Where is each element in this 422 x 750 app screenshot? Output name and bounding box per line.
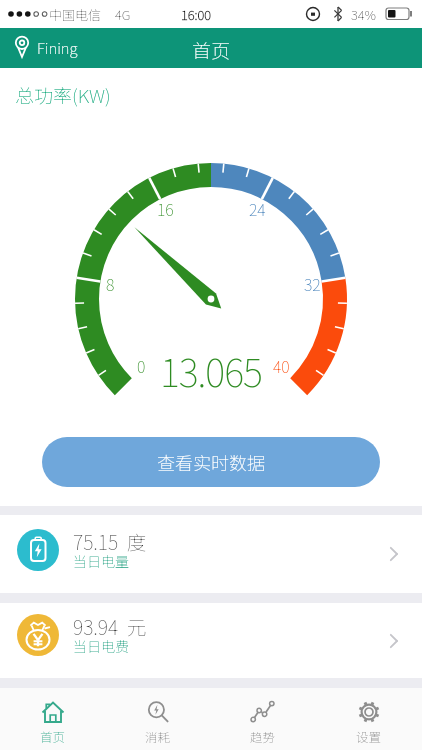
staticText: Fining — [37, 37, 78, 59]
staticText: 24 — [249, 197, 266, 220]
staticText: 查看实时数据 — [157, 449, 265, 475]
staticText: 75.15 度 — [73, 527, 147, 555]
button[interactable]: 93.94 元 — [0, 603, 422, 678]
staticText: 首页 — [40, 727, 66, 745]
staticText: 总功率(KW) — [15, 81, 111, 109]
staticText: 消耗 — [145, 727, 171, 745]
staticText: 32 — [304, 272, 321, 295]
staticText: 首页 — [192, 36, 231, 60]
staticText: 中国电信 — [49, 5, 102, 24]
staticText: 当日电量 — [73, 551, 129, 571]
button[interactable]: 趋势 — [210, 688, 316, 750]
button[interactable]: 75.15 度 — [0, 515, 422, 593]
staticText: 40 — [273, 354, 290, 377]
staticText: 设置 — [356, 727, 382, 745]
staticText: 当日电费 — [73, 636, 129, 656]
staticText: 16:00 — [181, 5, 212, 24]
button[interactable]: Fining — [14, 36, 78, 60]
staticText: 4G — [115, 5, 131, 24]
button[interactable]: 消耗 — [105, 688, 210, 750]
button[interactable]: 设置 — [316, 688, 422, 750]
button[interactable]: 首页 — [0, 688, 105, 750]
button[interactable]: 查看实时数据 — [42, 437, 380, 487]
staticText: 93.94 元 — [73, 612, 147, 640]
staticText: 16 — [157, 197, 174, 220]
staticText: 趋势 — [250, 727, 276, 745]
staticText: 0 — [137, 354, 146, 377]
staticText: 34% — [351, 5, 376, 24]
staticText: 8 — [106, 272, 115, 295]
staticText: 13.065 — [160, 343, 262, 398]
